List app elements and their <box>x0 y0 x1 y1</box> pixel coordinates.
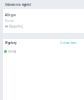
staticText: Wypłaty <box>5 41 16 45</box>
staticText: Konto <box>5 19 14 23</box>
staticText: Zobacz dane <box>60 41 77 45</box>
staticText: Dodaj <box>8 50 16 53</box>
button[interactable]: Dodaj <box>3 50 84 53</box>
staticText: Uzupełnij <box>9 25 23 28</box>
button[interactable]: Zobacz dane <box>60 41 77 45</box>
staticText: Ustawienia wypłat <box>5 3 31 6</box>
staticText: Allegro <box>5 13 16 17</box>
